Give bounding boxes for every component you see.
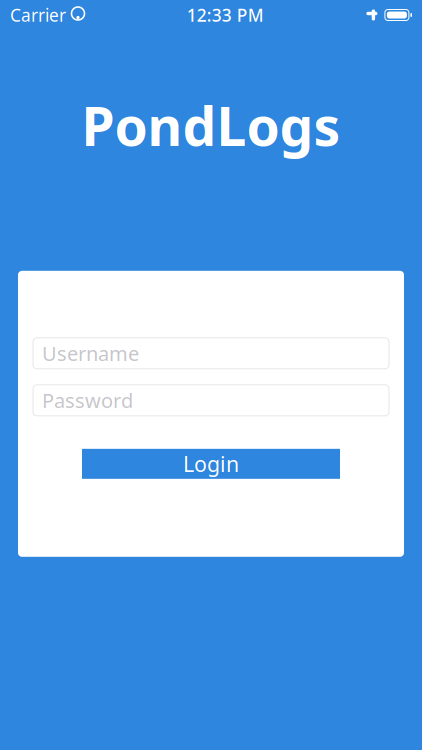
staticText: Login xyxy=(183,450,239,478)
button[interactable]: Username xyxy=(33,338,389,369)
staticText: Username xyxy=(42,340,139,367)
staticText: PondLogs xyxy=(81,90,340,161)
staticText: 12:33 PM xyxy=(187,3,264,26)
staticText: Carrier xyxy=(10,3,66,26)
staticText: Password xyxy=(42,387,133,414)
button[interactable]: Login xyxy=(82,449,340,479)
button[interactable]: Password xyxy=(33,385,389,416)
